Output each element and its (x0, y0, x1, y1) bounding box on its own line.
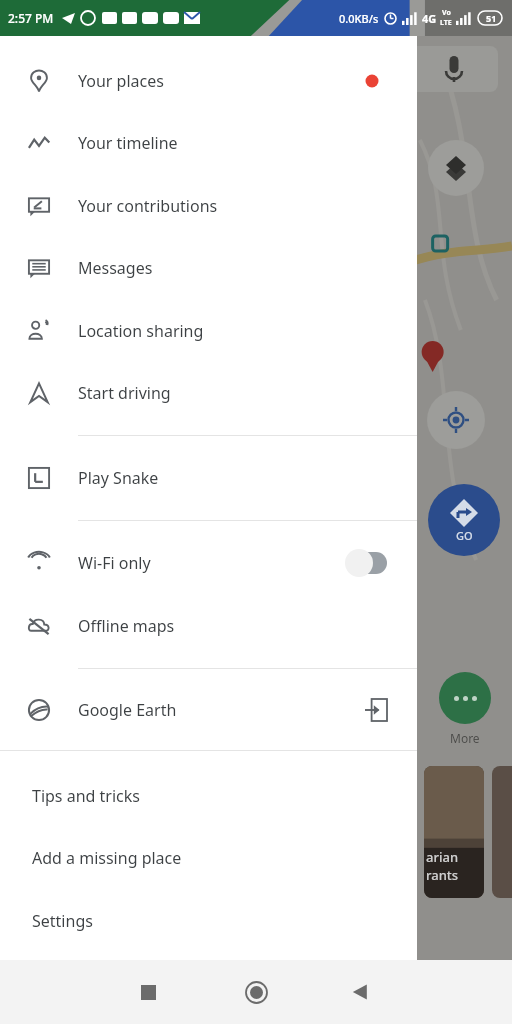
button[interactable]: Back (334, 960, 386, 1024)
staticText: Wi-Fi only (78, 552, 151, 574)
button[interactable]: Settings (0, 895, 417, 947)
staticText: Location sharing (78, 320, 204, 342)
staticText: Vo (442, 8, 451, 18)
button[interactable]: Start navigation (428, 484, 500, 556)
button[interactable]: Recent apps (122, 960, 174, 1024)
staticText: 51 (486, 12, 497, 24)
staticText: Your places (78, 70, 164, 92)
button[interactable]: Voice search (398, 46, 498, 92)
staticText: 2:57 PM (8, 10, 54, 26)
staticText: 0.0KB/s (339, 11, 379, 26)
staticText: Settings (32, 910, 93, 932)
button[interactable]: Your contributions (0, 180, 417, 232)
button[interactable]: Wi-Fi only toggle (343, 548, 395, 578)
staticText: Start driving (78, 382, 171, 404)
staticText: arian (426, 848, 459, 866)
staticText: More (450, 730, 480, 746)
button[interactable]: Home (230, 960, 282, 1024)
button[interactable]: My location (427, 391, 485, 449)
staticText: Play Snake (78, 467, 159, 489)
staticText: Messages (78, 257, 153, 279)
button[interactable]: Wi-Fi only (0, 537, 417, 589)
button[interactable]: Start driving (0, 367, 417, 419)
staticText: GO (456, 528, 473, 543)
staticText: Your contributions (78, 195, 218, 217)
button[interactable]: Add a missing place (0, 832, 417, 884)
button[interactable]: Map layers (428, 140, 484, 196)
staticText: Offline maps (78, 615, 175, 637)
button[interactable]: Location sharing (0, 305, 417, 357)
button[interactable]: Play Snake (0, 452, 417, 504)
button[interactable]: Your timeline (0, 117, 417, 169)
staticText: Add a missing place (32, 847, 182, 869)
staticText: Google Earth (78, 699, 177, 721)
staticText: LTE (440, 18, 452, 28)
staticText: Tips and tricks (32, 785, 140, 807)
staticText: rants (426, 866, 459, 884)
staticText: 4G (422, 11, 437, 26)
staticText: Your timeline (78, 132, 178, 154)
button[interactable]: Your places (0, 55, 417, 107)
button[interactable]: Google Earth (0, 684, 417, 736)
button[interactable]: Messages (0, 242, 417, 294)
button[interactable]: Tips and tricks (0, 770, 417, 822)
button[interactable]: Offline maps (0, 600, 417, 652)
button[interactable]: More (418, 672, 512, 746)
button[interactable]: Nearby place photo (492, 766, 512, 898)
button[interactable]: Vegetarian restaurants (424, 766, 484, 898)
